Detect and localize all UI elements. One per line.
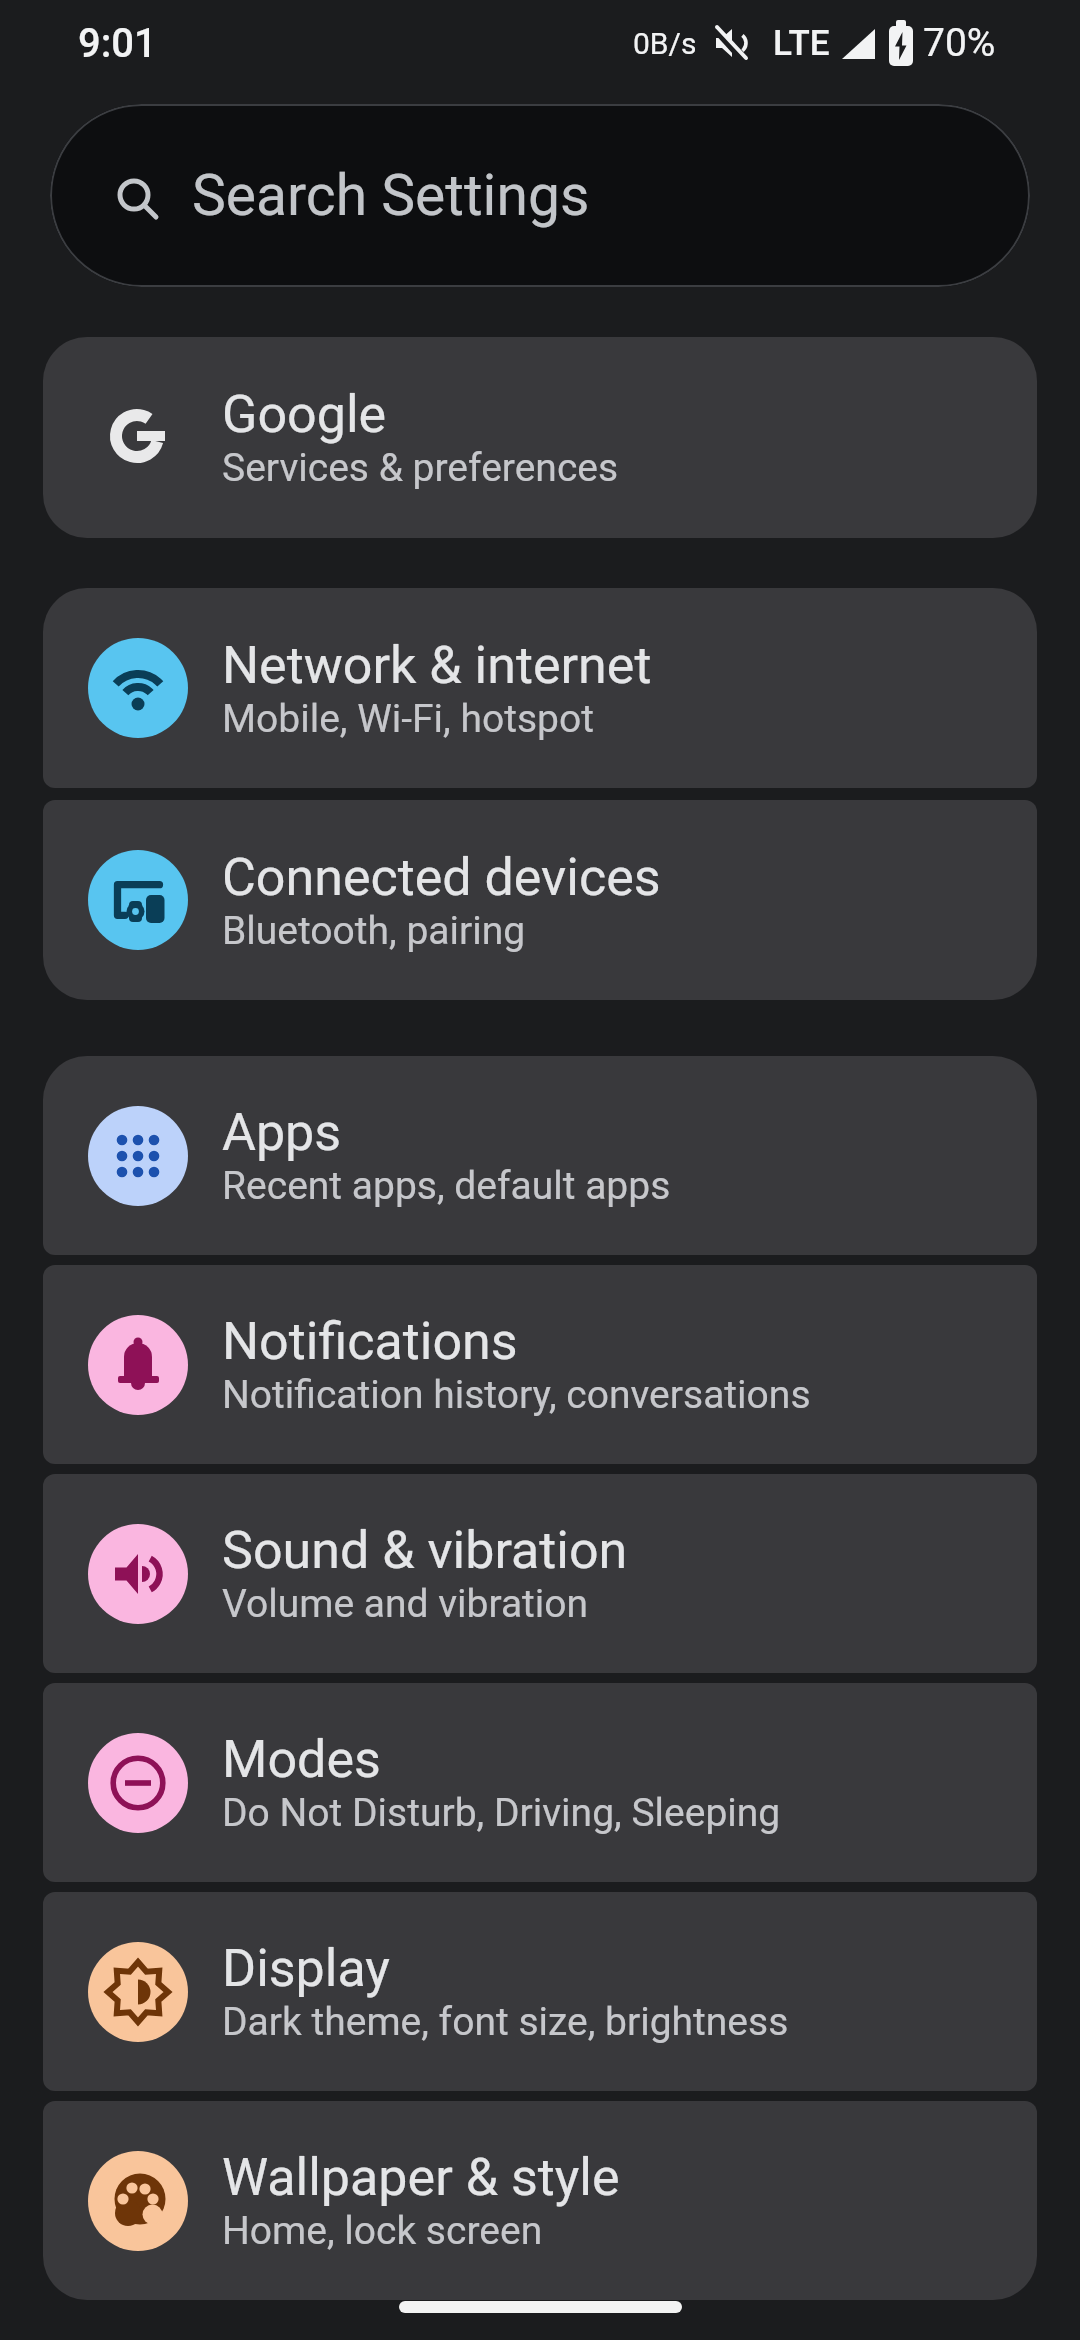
staticText: Connected devices [222, 847, 661, 908]
staticText: Bluetooth, pairing [222, 908, 526, 954]
staticText: Volume and vibration [222, 1581, 589, 1627]
button[interactable]: Apps [43, 1056, 1037, 1255]
staticText: Apps [222, 1102, 342, 1163]
staticText: Notifications [222, 1311, 518, 1372]
button[interactable]: Connected devices [43, 800, 1037, 1000]
staticText: Modes [222, 1729, 381, 1790]
staticText: 9:01 [78, 20, 157, 67]
button[interactable]: Notifications [43, 1265, 1037, 1464]
staticText: Search Settings [192, 162, 590, 229]
staticText: Services & preferences [222, 445, 619, 491]
staticText: Sound & vibration [222, 1520, 628, 1581]
staticText: Mobile, Wi-Fi, hotspot [222, 696, 594, 742]
staticText: LTE [773, 23, 830, 64]
staticText: 0B/s [633, 26, 697, 61]
staticText: Google [222, 384, 387, 445]
staticText: Display [222, 1938, 390, 1999]
staticText: Wallpaper & style [222, 2147, 620, 2208]
staticText: Network & internet [222, 635, 652, 696]
button[interactable]: Wallpaper & style [43, 2101, 1037, 2300]
staticText: Home, lock screen [222, 2208, 543, 2254]
button[interactable]: Display [43, 1892, 1037, 2091]
button[interactable]: Search Settings [50, 104, 1030, 287]
button[interactable]: Google [43, 337, 1037, 538]
button[interactable]: Modes [43, 1683, 1037, 1882]
staticText: 70% [923, 20, 996, 66]
staticText: Do Not Disturb, Driving, Sleeping [222, 1790, 781, 1836]
staticText: Notification history, conversations [222, 1372, 811, 1418]
button[interactable]: Network & internet [43, 588, 1037, 788]
staticText: Dark theme, font size, brightness [222, 1999, 789, 2045]
staticText: Recent apps, default apps [222, 1163, 671, 1209]
button[interactable]: Sound & vibration [43, 1474, 1037, 1673]
